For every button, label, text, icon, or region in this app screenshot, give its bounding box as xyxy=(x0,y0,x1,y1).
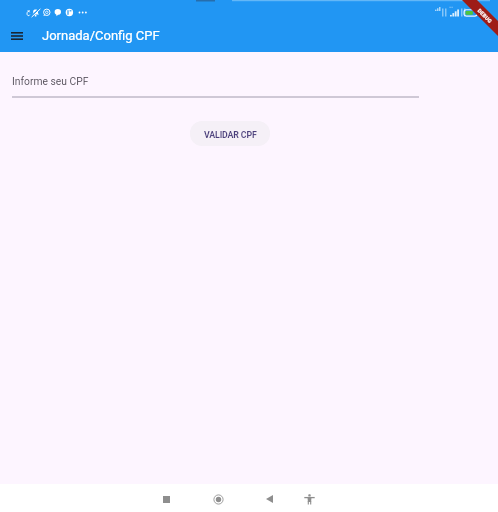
button[interactable]: Home xyxy=(204,485,232,512)
staticText: DEBUG xyxy=(476,7,493,24)
button[interactable]: Recent apps xyxy=(152,485,180,512)
button[interactable]: Informe seu CPF xyxy=(12,75,419,87)
staticText: VALIDAR CPF xyxy=(204,130,257,140)
button[interactable]: Menu xyxy=(5,24,28,47)
staticText: Informe seu CPF xyxy=(12,75,89,87)
button[interactable]: Accessibility xyxy=(295,485,323,512)
staticText: Jornada/Config CPF xyxy=(42,28,160,43)
button[interactable]: Back xyxy=(255,485,283,512)
button[interactable]: VALIDAR CPF xyxy=(190,121,270,146)
